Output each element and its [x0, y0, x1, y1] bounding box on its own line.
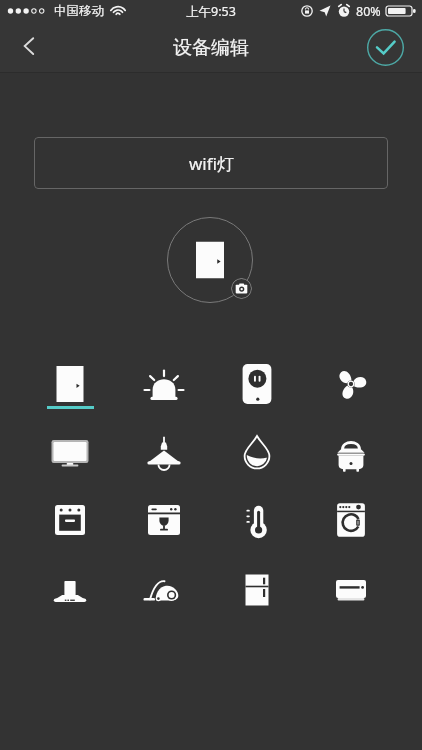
button[interactable]: Vacuum [118, 560, 210, 620]
staticText: 上午9:53 [186, 3, 236, 20]
button[interactable]: wifi灯 [34, 137, 388, 189]
button[interactable]: Back [0, 22, 52, 73]
staticText: 设备编辑 [173, 36, 249, 60]
button[interactable]: TV [24, 422, 116, 482]
button[interactable]: Take photo [231, 278, 252, 299]
button[interactable]: Washing machine [305, 490, 397, 550]
button[interactable]: Door [24, 354, 116, 414]
button[interactable]: Dishwasher [118, 490, 210, 550]
button[interactable]: Fan [305, 354, 397, 414]
button[interactable]: Air conditioner [305, 560, 397, 620]
button[interactable]: Range hood [24, 560, 116, 620]
button[interactable]: Pendant lamp [118, 422, 210, 482]
button[interactable]: Oven [24, 490, 116, 550]
button[interactable]: Socket [211, 354, 303, 414]
button[interactable]: Rice cooker [305, 422, 397, 482]
staticText: 80% [356, 3, 381, 20]
button[interactable]: Humidifier [211, 422, 303, 482]
button[interactable]: Light [118, 354, 210, 414]
button[interactable]: Thermostat [211, 490, 303, 550]
button[interactable]: Confirm [367, 29, 404, 66]
staticText: wifi灯 [189, 152, 234, 175]
button[interactable]: Refrigerator [211, 560, 303, 620]
staticText: 中国移动 [54, 3, 104, 19]
button[interactable]: Change device icon [167, 217, 253, 303]
